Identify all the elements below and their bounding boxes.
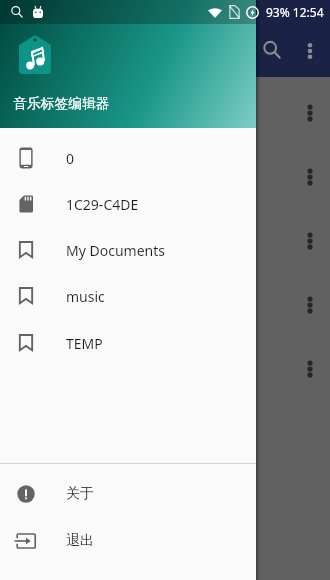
button[interactable]: music: [0, 273, 256, 319]
button[interactable]: 关于: [0, 471, 256, 517]
staticText: My Documents: [66, 241, 165, 260]
button[interactable]: More options: [290, 31, 330, 71]
button[interactable]: Item options: [0, 205, 330, 269]
button[interactable]: Item options: [290, 93, 330, 133]
button[interactable]: Item options: [290, 221, 330, 261]
staticText: 退出: [66, 532, 94, 550]
button[interactable]: TEMP: [0, 320, 256, 366]
button[interactable]: Item options: [0, 141, 330, 205]
staticText: 0: [66, 149, 75, 168]
button[interactable]: Item options: [0, 77, 330, 141]
button[interactable]: Search: [252, 30, 292, 70]
staticText: TEMP: [66, 334, 103, 353]
button[interactable]: My Documents: [0, 227, 256, 273]
button[interactable]: Item options: [290, 349, 330, 389]
button[interactable]: Item options: [0, 333, 330, 397]
button[interactable]: Item options: [290, 157, 330, 197]
staticText: 音乐标签编辑器: [13, 95, 110, 112]
staticText: 93% 12:54: [266, 4, 324, 20]
button[interactable]: 1C29-C4DE: [0, 181, 256, 227]
button[interactable]: Item options: [0, 269, 330, 333]
button[interactable]: 退出: [0, 518, 256, 564]
staticText: 1C29-C4DE: [66, 195, 139, 214]
button[interactable]: 0: [0, 135, 256, 181]
button[interactable]: Item options: [290, 285, 330, 325]
staticText: 关于: [66, 485, 94, 503]
staticText: music: [66, 287, 105, 306]
